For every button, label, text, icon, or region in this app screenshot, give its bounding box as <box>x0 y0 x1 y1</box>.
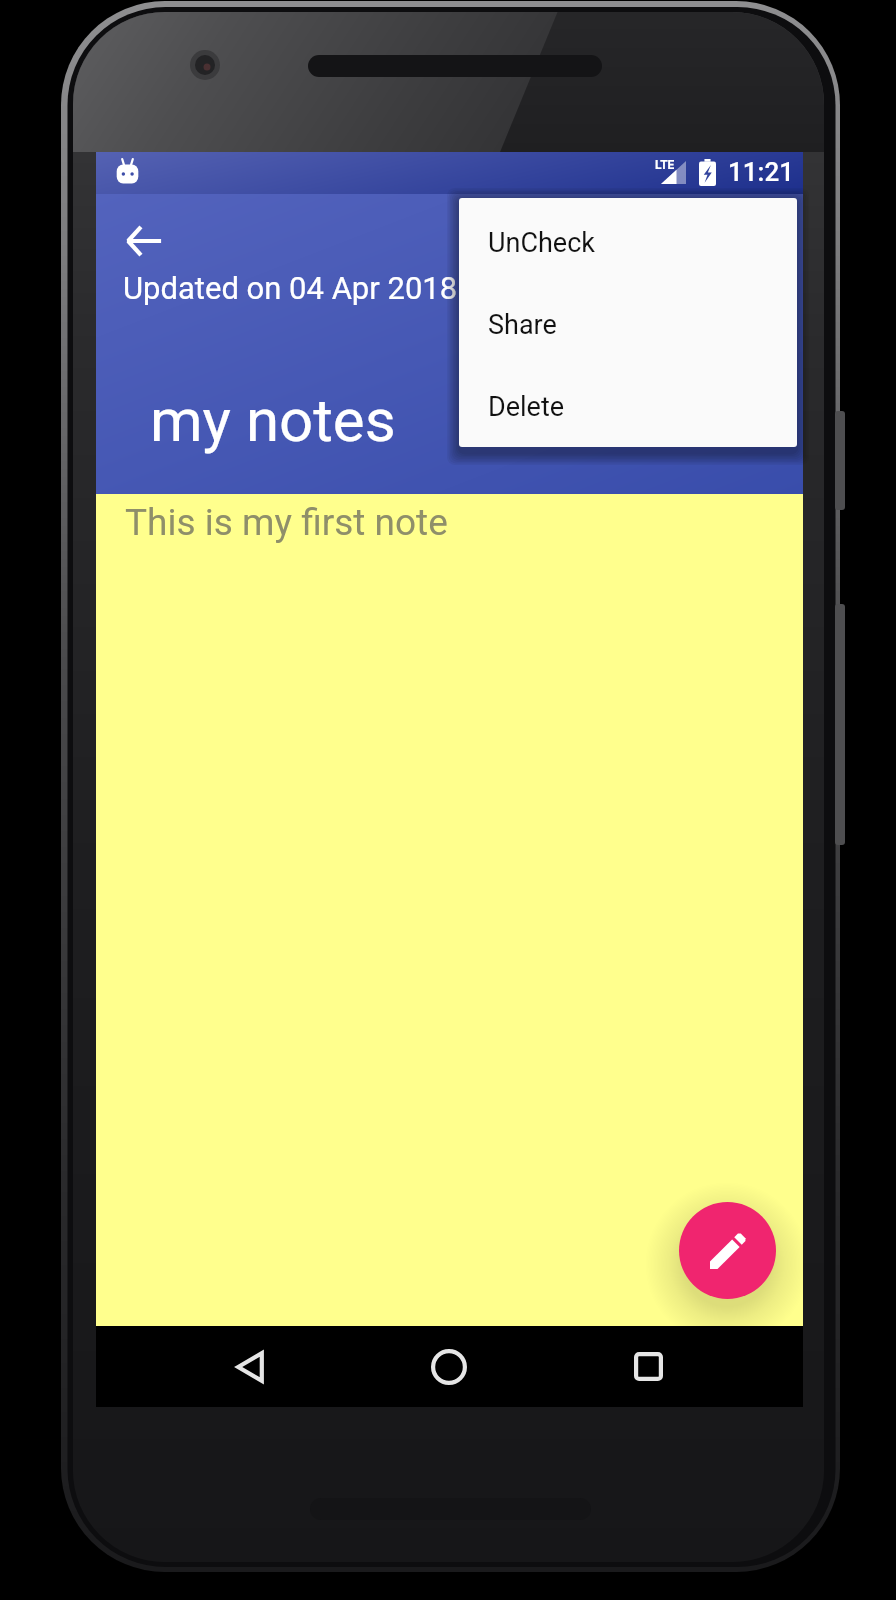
staticText: 11:21 <box>728 157 794 187</box>
button[interactable]: Edit note <box>679 1202 776 1299</box>
staticText: LTE <box>655 158 675 172</box>
staticText: This is my first note <box>125 501 448 544</box>
button[interactable]: Delete <box>459 366 797 447</box>
button[interactable]: Share <box>459 284 797 366</box>
button[interactable]: Home <box>409 1326 489 1407</box>
button[interactable]: Back <box>210 1326 290 1407</box>
staticText: my notes <box>150 385 396 455</box>
staticText: Share <box>488 309 557 341</box>
staticText: Delete <box>488 391 565 423</box>
staticText: Updated on 04 Apr 2018 <box>123 270 458 306</box>
button[interactable]: Recents <box>608 1326 688 1407</box>
staticText: UnCheck <box>488 227 595 259</box>
button[interactable]: Back <box>116 213 172 269</box>
button[interactable]: UnCheck <box>459 202 797 284</box>
